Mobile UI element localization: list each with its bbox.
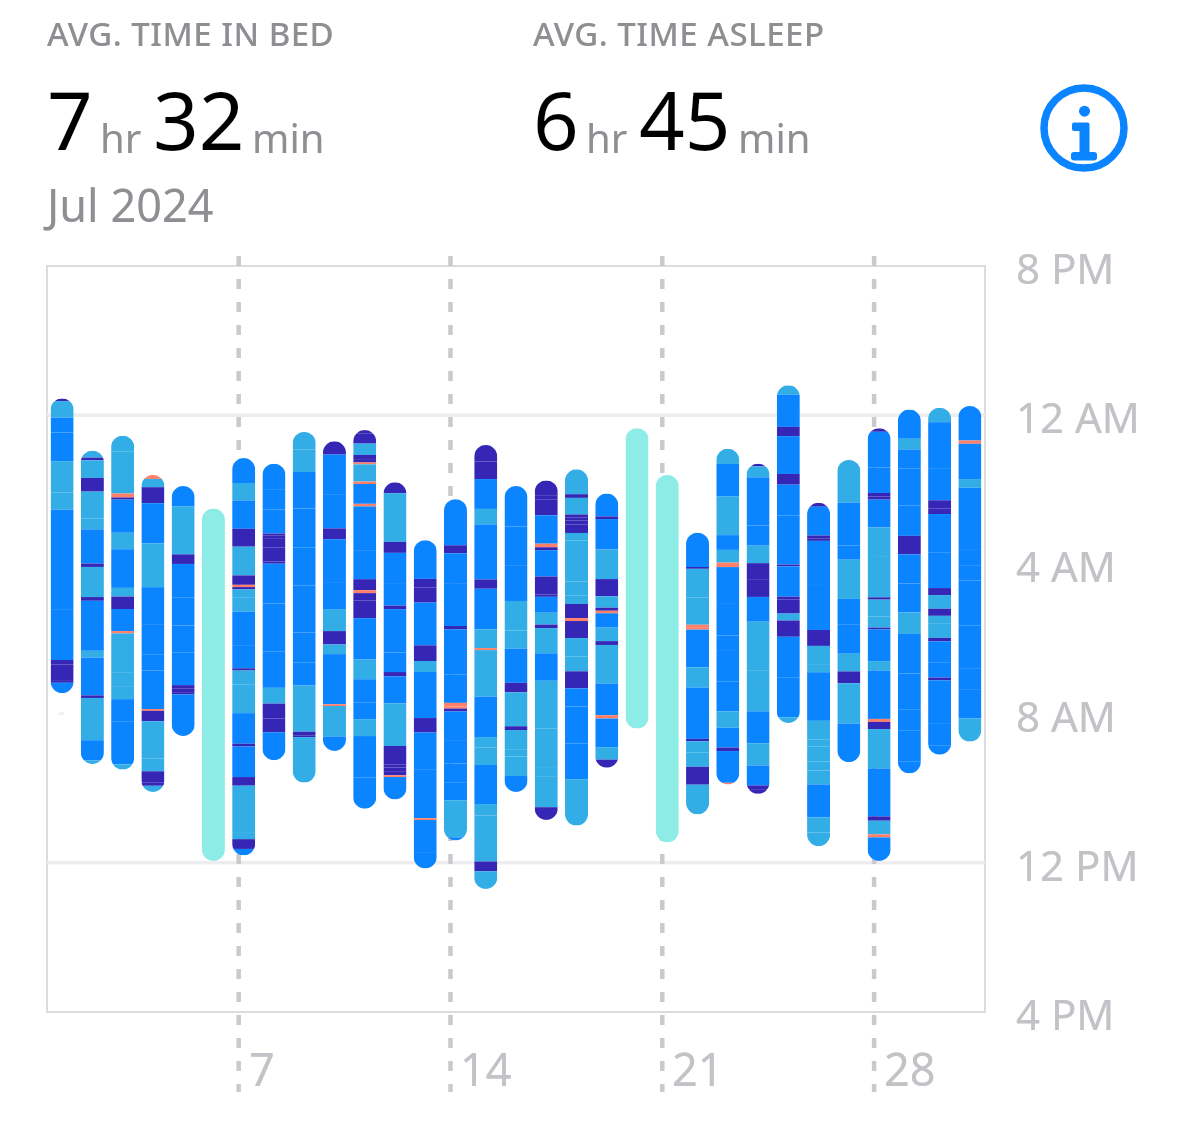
staticText: 14 bbox=[460, 1038, 512, 1099]
staticText: hr bbox=[586, 110, 628, 164]
staticText: 4 AM bbox=[1016, 537, 1116, 594]
staticText: 45 bbox=[639, 64, 731, 173]
staticText: hr bbox=[100, 110, 142, 164]
staticText: AVG. TIME IN BED bbox=[47, 11, 335, 56]
staticText: Jul 2024 bbox=[47, 174, 214, 235]
button[interactable]: Info bbox=[1036, 80, 1132, 176]
staticText: 12 AM bbox=[1016, 388, 1140, 445]
staticText: 7 bbox=[47, 64, 93, 173]
staticText: 4 PM bbox=[1016, 985, 1115, 1042]
staticText: 21 bbox=[672, 1038, 724, 1099]
staticText: 28 bbox=[884, 1038, 936, 1099]
staticText: 32 bbox=[153, 64, 245, 173]
staticText: min bbox=[252, 110, 325, 164]
staticText: 12 PM bbox=[1016, 836, 1139, 893]
staticText: AVG. TIME ASLEEP bbox=[533, 11, 825, 56]
staticText: 8 AM bbox=[1016, 687, 1116, 744]
staticText: 6 bbox=[533, 64, 579, 173]
staticText: 8 PM bbox=[1016, 239, 1115, 296]
staticText: min bbox=[738, 110, 811, 164]
staticText: 7 bbox=[249, 1038, 275, 1099]
